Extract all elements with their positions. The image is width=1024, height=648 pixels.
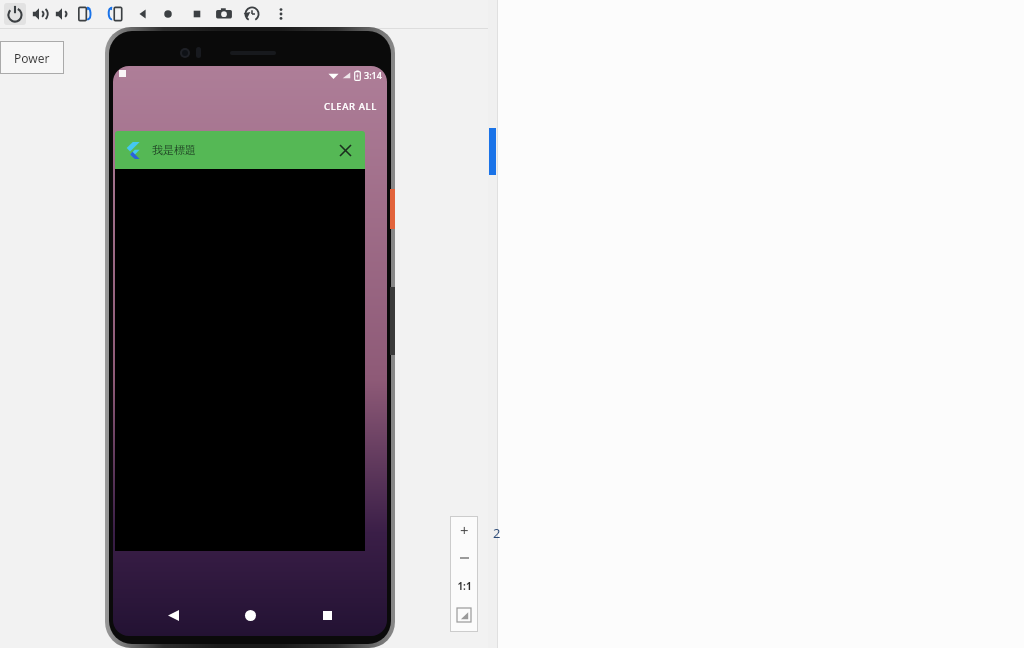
staticText: Power — [14, 50, 50, 66]
staticText: CLEAR ALL — [324, 100, 377, 113]
button[interactable]: History — [241, 3, 263, 25]
staticText: 3:14 — [364, 69, 382, 81]
button[interactable]: Home — [233, 598, 267, 632]
button[interactable]: Rotate left — [74, 3, 96, 25]
staticText: 我是標題 — [152, 143, 196, 157]
button[interactable]: 我是標題 — [115, 131, 365, 169]
button[interactable]: Volume up — [28, 3, 50, 25]
button[interactable]: Recents — [310, 598, 344, 632]
button[interactable]: Zoom out — [450, 544, 478, 572]
button[interactable]: Take screenshot — [213, 3, 235, 25]
button[interactable]: Power — [0, 41, 64, 74]
staticText: + — [460, 520, 469, 540]
button[interactable]: More — [270, 3, 292, 25]
button[interactable]: Home — [157, 3, 179, 25]
button[interactable]: Rotate right — [105, 3, 127, 25]
button[interactable]: Zoom in — [450, 516, 478, 544]
staticText: 2 — [493, 524, 501, 542]
button[interactable]: Power — [4, 3, 26, 25]
button[interactable]: Back — [132, 3, 154, 25]
button[interactable]: Volume down — [51, 3, 73, 25]
button[interactable]: Overview — [186, 3, 208, 25]
button[interactable]: Back — [156, 598, 190, 632]
button[interactable]: Close — [335, 140, 355, 160]
button[interactable]: Actual size — [450, 572, 478, 600]
staticText: 1:1 — [457, 579, 472, 593]
button[interactable]: CLEAR ALL — [318, 97, 383, 116]
button[interactable]: Fit to window — [450, 600, 478, 630]
